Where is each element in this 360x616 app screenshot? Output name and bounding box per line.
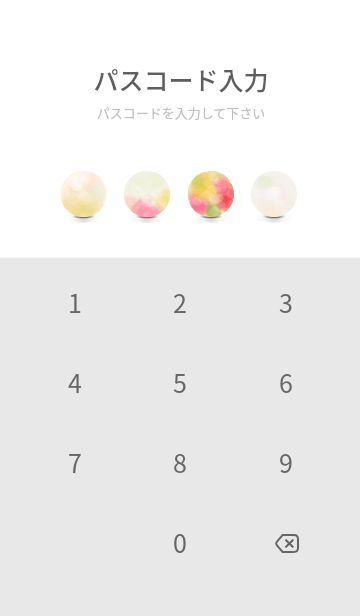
staticText: 8 [173, 444, 187, 480]
button[interactable]: 1 [31, 269, 119, 335]
button[interactable]: 0 [136, 509, 224, 575]
button[interactable]: Delete [242, 510, 330, 576]
staticText: 1 [68, 284, 82, 320]
button[interactable]: 6 [242, 349, 330, 415]
staticText: 4 [68, 364, 82, 400]
button[interactable]: 9 [242, 429, 330, 495]
staticText: パスコード入力 [1, 61, 360, 97]
staticText: 9 [279, 444, 293, 480]
button[interactable]: 4 [31, 349, 119, 415]
button[interactable]: 3 [242, 269, 330, 335]
staticText: 2 [173, 284, 187, 320]
staticText: 5 [173, 364, 187, 400]
staticText: 6 [279, 364, 293, 400]
staticText: 3 [279, 284, 293, 320]
button[interactable]: 2 [136, 269, 224, 335]
staticText: 7 [68, 444, 82, 480]
staticText: 0 [173, 524, 187, 560]
button[interactable]: 8 [136, 429, 224, 495]
button[interactable]: 7 [31, 429, 119, 495]
staticText: パスコードを入力して下さい [1, 103, 360, 122]
button[interactable]: 5 [136, 349, 224, 415]
